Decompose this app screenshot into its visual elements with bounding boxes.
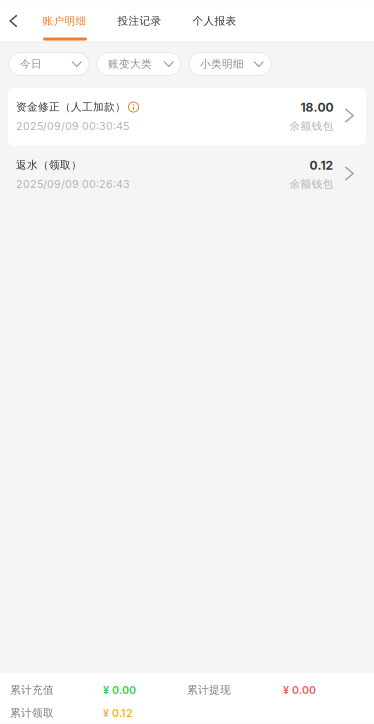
staticText: 累计领取: [10, 706, 54, 720]
button[interactable]: 个人报表: [177, 0, 252, 41]
staticText: 2025/09/09 00:30:45: [16, 120, 129, 133]
staticText: ¥ 0.00: [103, 683, 136, 696]
staticText: 18.00: [300, 100, 333, 114]
button[interactable]: Back: [0, 0, 27, 41]
staticText: 累计提现: [187, 683, 231, 697]
button[interactable]: 资金修正（人工加款）: [8, 87, 366, 145]
button[interactable]: 投注记录: [102, 0, 177, 41]
staticText: 2025/09/09 00:26:43: [16, 178, 130, 191]
staticText: 资金修正（人工加款）: [16, 100, 126, 114]
button[interactable]: 今日: [9, 52, 89, 75]
staticText: 账变大类: [108, 57, 152, 71]
staticText: 余额钱包: [289, 177, 333, 191]
staticText: 个人报表: [192, 14, 236, 28]
button[interactable]: 返水（领取）: [8, 145, 366, 203]
staticText: 累计充值: [10, 683, 54, 697]
staticText: 投注记录: [117, 14, 161, 28]
staticText: 返水（领取）: [16, 158, 82, 172]
button[interactable]: 账户明细: [27, 0, 102, 41]
staticText: 小类明细: [200, 57, 244, 71]
staticText: 余额钱包: [289, 119, 333, 133]
staticText: ¥ 0.12: [103, 706, 133, 719]
staticText: 账户明细: [42, 14, 86, 28]
staticText: 今日: [20, 57, 42, 71]
button[interactable]: 账变大类: [97, 52, 181, 75]
button[interactable]: 小类明细: [189, 52, 271, 75]
staticText: ¥ 0.00: [283, 683, 316, 696]
staticText: 0.12: [309, 158, 333, 172]
